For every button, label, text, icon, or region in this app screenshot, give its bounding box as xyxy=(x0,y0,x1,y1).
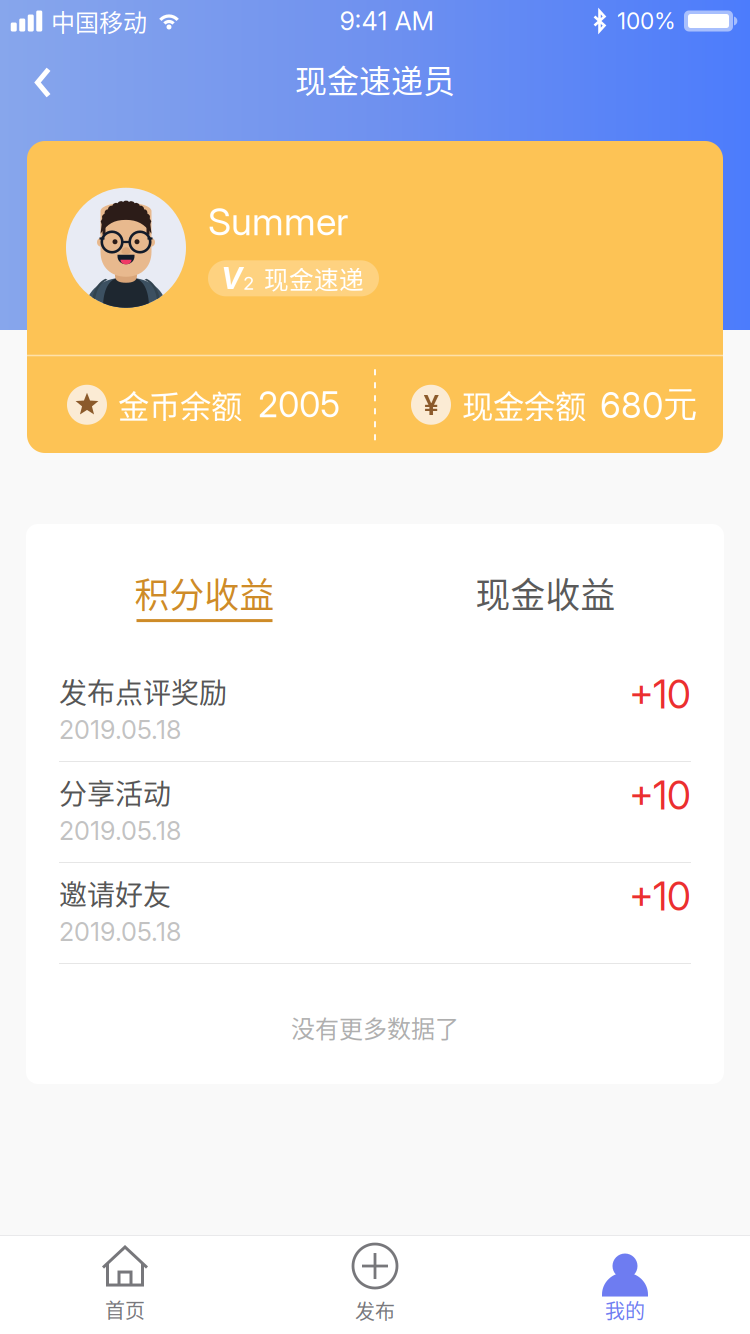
staticText: 发布点评奖励 xyxy=(59,671,227,711)
staticText: V xyxy=(221,261,242,296)
button[interactable]: 积分收益 xyxy=(114,565,294,625)
staticText: 现金速递 xyxy=(264,260,364,296)
staticText: 2005 xyxy=(258,384,340,426)
staticText: 积分收益 xyxy=(134,568,274,618)
staticText: 680元 xyxy=(600,383,698,427)
staticText: 邀请好友 xyxy=(59,873,171,913)
staticText: 2019.05.18 xyxy=(59,916,181,947)
staticText: 现金速递员 xyxy=(295,56,455,102)
staticText: +10 xyxy=(629,772,691,819)
button[interactable]: 我的 xyxy=(500,1235,750,1334)
staticText: 首页 xyxy=(105,1295,145,1324)
staticText: ¥ xyxy=(423,388,438,422)
button[interactable]: 首页 xyxy=(0,1235,250,1334)
staticText: 我的 xyxy=(605,1295,645,1324)
staticText: 现金余额 xyxy=(462,382,586,427)
staticText: +10 xyxy=(629,671,691,718)
staticText: Summer xyxy=(208,199,348,244)
button[interactable]: 现金收益 xyxy=(455,565,635,625)
staticText: 金币余额 xyxy=(118,382,242,427)
staticText: 分享活动 xyxy=(59,772,171,812)
staticText: 9:41 AM xyxy=(339,6,434,36)
staticText: 没有更多数据了 xyxy=(291,1010,459,1045)
staticText: 发布 xyxy=(355,1296,395,1325)
button[interactable]: Back xyxy=(0,32,86,113)
staticText: 100% xyxy=(617,7,676,35)
staticText: +10 xyxy=(629,873,691,920)
staticText: 2 xyxy=(243,271,254,294)
staticText: 2019.05.18 xyxy=(59,714,181,745)
button[interactable]: 发布 xyxy=(250,1235,500,1334)
staticText: 现金收益 xyxy=(475,568,615,618)
staticText: 中国移动 xyxy=(51,4,147,38)
staticText: 2019.05.18 xyxy=(59,815,181,846)
